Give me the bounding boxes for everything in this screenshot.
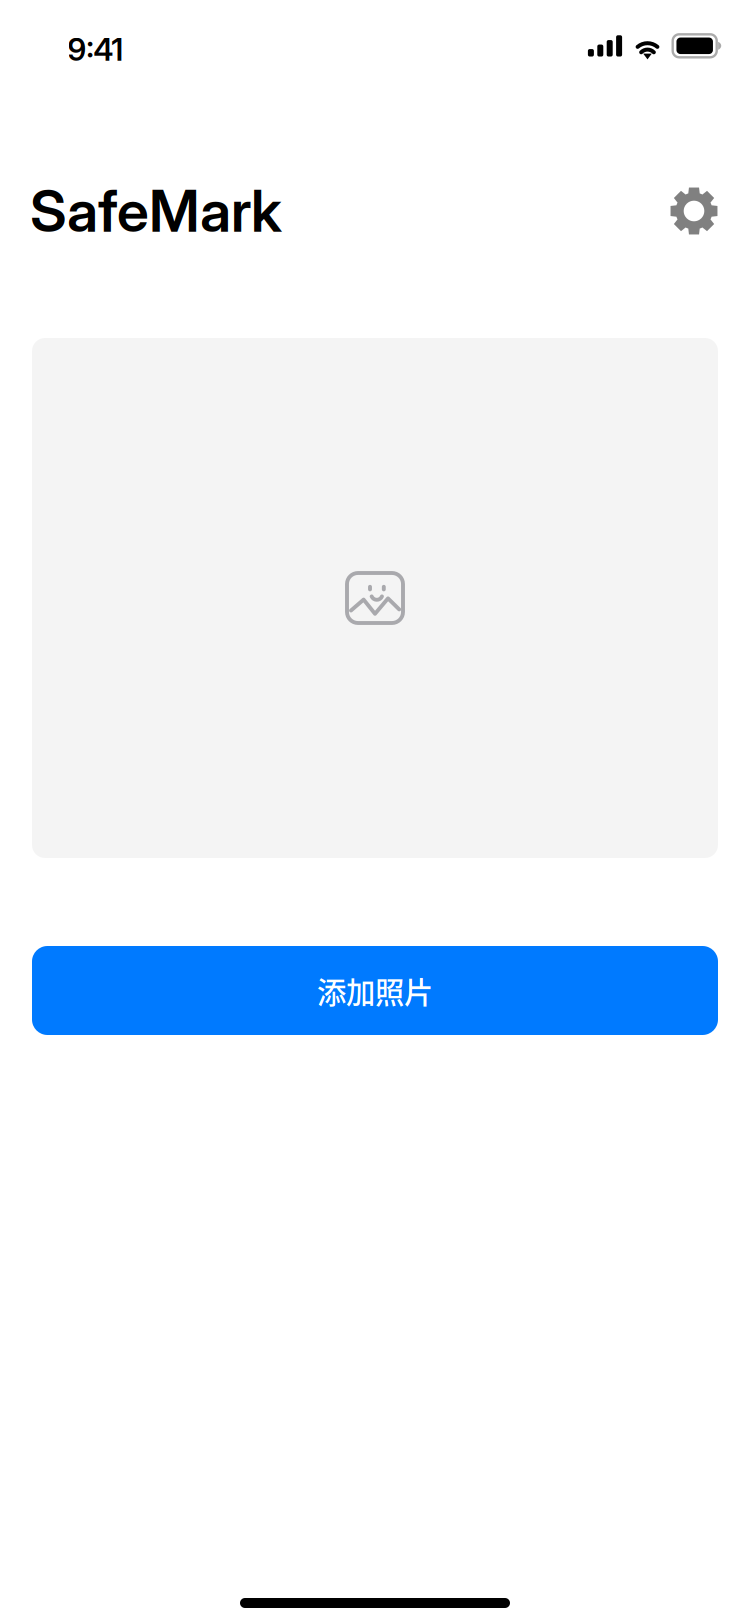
button[interactable]: Settings [666,183,722,239]
staticText: SafeMark [30,176,282,246]
staticText: 添加照片 [317,969,433,1012]
button[interactable]: Select a photo [32,338,718,858]
button[interactable]: 添加照片 [32,946,718,1035]
staticText: 9:41 [67,31,123,68]
